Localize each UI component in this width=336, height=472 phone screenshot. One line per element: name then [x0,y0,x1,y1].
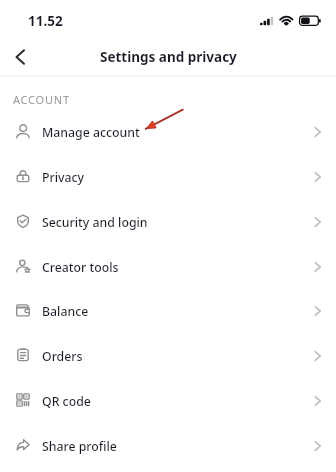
staticText: Manage account [42,124,140,141]
button[interactable]: Manage account [0,110,336,154]
staticText: Creator tools [42,259,119,276]
button[interactable]: Share profile [0,424,336,468]
button[interactable]: Creator tools [0,245,336,289]
button[interactable]: Orders [0,334,336,378]
button[interactable]: Security and login [0,200,336,244]
staticText: Settings and privacy [100,48,237,66]
button[interactable]: Balance [0,289,336,333]
staticText: Share profile [42,438,117,455]
staticText: ACCOUNT [13,92,70,107]
staticText: Orders [42,348,83,365]
button[interactable]: Privacy [0,155,336,199]
staticText: Privacy [42,169,85,186]
staticText: Balance [42,303,89,320]
staticText: QR code [42,393,91,410]
staticText: Security and login [42,214,148,231]
staticText: 11.52 [28,12,63,30]
button[interactable]: QR code [0,379,336,423]
button[interactable]: Back [2,39,38,75]
